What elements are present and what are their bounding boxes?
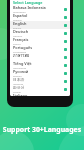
staticText: Русский [13,69,29,74]
staticText: Vietnamese [13,66,27,69]
staticText: Español [13,13,28,18]
staticText: Select Language [13,0,43,5]
staticText: Bahasa Indonesia [13,5,46,10]
staticText: ภาษาไทย [13,53,30,59]
button[interactable]: Français [10,37,70,45]
staticText: Português [13,45,33,50]
staticText: Support 30+Languages [0,125,84,134]
staticText: Japanese [13,82,24,85]
staticText: Spanish [13,18,22,21]
button[interactable]: Português [10,45,70,53]
button[interactable]: Español [10,13,70,21]
staticText: Italiano [13,93,28,96]
staticText: German [13,34,23,37]
staticText: Korean [13,90,22,93]
button[interactable]: Русский [10,69,70,77]
staticText: French [13,42,21,45]
staticText: 日本語 [13,77,25,82]
staticText: Russian [13,74,22,77]
button[interactable]: Deutsch [10,29,70,37]
staticText: Deutsch [13,29,29,34]
button[interactable]: 日本語 [10,77,70,85]
button[interactable]: English [10,21,70,29]
staticText: English [13,21,27,26]
button[interactable]: 한국어 [10,85,70,93]
staticText: Tiếng Việt [13,61,32,66]
staticText: English [13,26,22,29]
button[interactable]: Italiano [10,93,70,96]
staticText: 한국어 [13,85,25,90]
staticText: Portuguese [13,50,27,53]
button[interactable]: Bahasa Indonesia [10,5,70,13]
staticText: Français [13,37,29,42]
button[interactable]: Tiếng Việt [10,61,70,69]
staticText: Indonesian [13,10,26,13]
button[interactable]: ภาษาไทย [10,53,70,61]
